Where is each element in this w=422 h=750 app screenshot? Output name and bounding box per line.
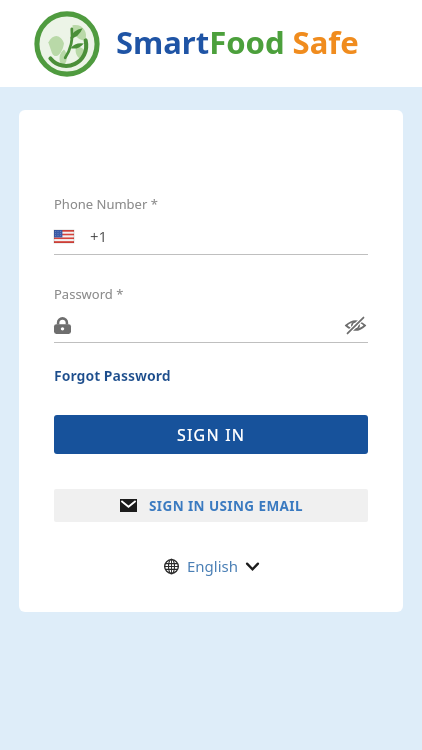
staticText: Phone Number * — [54, 195, 158, 213]
staticText: English — [187, 556, 239, 576]
staticText: SmartFood Safe — [116, 21, 359, 63]
staticText: Password * — [54, 285, 124, 303]
staticText: +1 — [90, 226, 108, 246]
button[interactable]: SIGN IN — [54, 415, 368, 454]
staticText: SIGN IN — [177, 424, 246, 446]
button[interactable]: English — [164, 556, 259, 576]
button[interactable]: Forgot Password — [54, 366, 171, 385]
button[interactable]: SIGN IN USING EMAIL — [54, 489, 368, 522]
staticText: SIGN IN USING EMAIL — [149, 497, 303, 515]
staticText: Forgot Password — [54, 366, 171, 385]
button[interactable]: Show password — [342, 312, 368, 338]
